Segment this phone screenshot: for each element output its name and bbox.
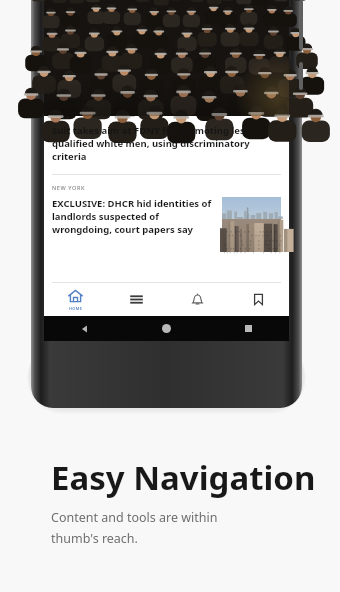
button[interactable]	[44, 0, 289, 116]
staticText: EXCLUSIVE: DHCR hid identities of landlo…	[52, 197, 215, 236]
staticText: NEW YORK	[52, 184, 86, 191]
button[interactable]: Notifications	[167, 283, 228, 316]
staticText: Suit takes aim at FDNY for promoting les…	[52, 124, 279, 163]
button[interactable]: Back	[44, 316, 125, 341]
button[interactable]: Saved	[228, 283, 289, 316]
staticText: Easy Navigation	[51, 455, 316, 500]
button[interactable]: Recent apps	[207, 316, 289, 341]
button[interactable]: Home	[44, 283, 106, 316]
button[interactable]: Home	[125, 316, 207, 341]
button[interactable]: Sections menu	[106, 283, 167, 316]
staticText: HOME	[69, 306, 83, 311]
staticText: Content and tools are within thumb's rea…	[51, 509, 218, 546]
button[interactable]: NEW YORK	[44, 175, 289, 252]
button[interactable]: Suit takes aim at FDNY for promoting les…	[44, 116, 289, 174]
